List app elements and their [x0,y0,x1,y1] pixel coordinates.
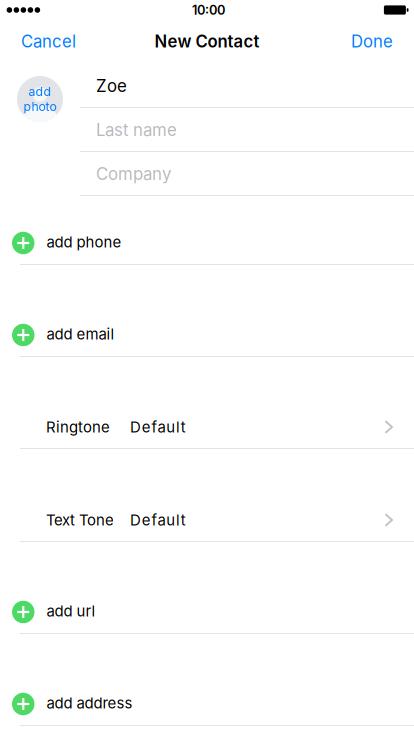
staticText: add address [46,694,132,712]
button[interactable]: add email [0,313,414,357]
staticText: add phone [46,233,121,251]
staticText: New Contact [154,31,259,52]
button[interactable]: add phone [0,221,414,265]
staticText: 10:00 [192,2,225,18]
button[interactable]: add url [0,590,414,634]
staticText: Cancel [21,31,76,52]
button[interactable]: Text Tone [0,498,414,542]
button[interactable]: Done [341,20,403,63]
button[interactable]: Cancel [11,20,86,63]
staticText: Default [130,511,186,529]
button[interactable]: Ringtone [0,405,414,449]
staticText: Ringtone [46,418,110,436]
staticText: Company [96,164,171,184]
button[interactable]: add address [0,682,414,726]
staticText: Done [351,31,393,52]
staticText: Last name [96,120,177,140]
button[interactable]: Add photo [17,76,63,122]
staticText: photo [23,99,56,114]
staticText: add email [46,325,114,343]
staticText: add url [46,602,95,620]
staticText: Default [130,418,186,436]
staticText: Zoe [96,76,127,96]
staticText: add [28,84,51,99]
staticText: Text Tone [46,511,114,529]
